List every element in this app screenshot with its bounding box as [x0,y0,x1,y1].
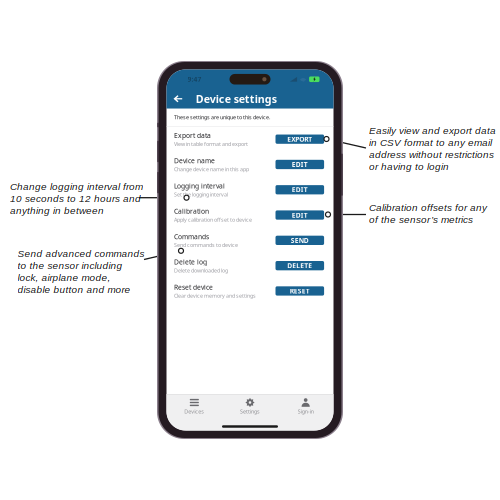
staticText: Delete downloaded log [174,267,228,274]
button[interactable]: Reset device [166,278,333,304]
staticText: Change logging interval from [10,181,143,192]
staticText: Settings [240,408,260,415]
staticText: These settings are unique to this device… [174,114,270,121]
button[interactable]: Logging interval [166,177,333,202]
staticText: Delete log [174,257,207,266]
staticText: to the sensor including [17,260,122,271]
button[interactable]: Export data [166,126,333,152]
staticText: lock, airplane mode, [17,272,110,283]
button[interactable]: Commands [166,228,333,253]
button[interactable]: Devices [166,395,222,416]
staticText: 10 seconds to 12 hours and [10,193,141,204]
button[interactable]: Device name [166,152,333,177]
staticText: Apply calibration offset to device [174,216,252,223]
button[interactable]: Sign-in [278,395,333,416]
staticText: SEND [291,236,309,245]
staticText: address without restrictions [369,149,494,160]
staticText: Change device name in this app [174,166,249,173]
staticText: Calibration [174,207,209,216]
staticText: Set the logging interval [174,191,228,198]
staticText: DELETE [287,261,312,270]
staticText: Send advanced commands [17,248,144,259]
staticText: Export data [174,131,211,140]
staticText: 9:47 [187,75,201,84]
staticText: Logging interval [174,181,225,190]
staticText: EDIT [292,160,308,169]
staticText: or having to login [369,161,449,172]
staticText: in CSV format to any email [369,137,492,148]
staticText: Reset device [174,283,213,292]
staticText: Sign-in [298,408,314,415]
staticText: disable button and more [17,284,130,295]
staticText: RESET [290,286,310,295]
staticText: EXPORT [287,135,312,144]
staticText: EDIT [292,185,308,194]
button[interactable]: Back [169,89,186,108]
staticText: Calibration offsets for any [369,202,487,213]
staticText: Device settings [196,92,277,106]
button[interactable]: Settings [222,395,278,416]
staticText: Device name [174,156,215,165]
staticText: Send commands to device [174,241,238,249]
staticText: View in table format and export [174,140,248,147]
button[interactable]: Calibration [166,202,333,228]
staticText: EDIT [292,211,308,219]
staticText: Commands [174,232,209,241]
staticText: of the sensor’s metrics [369,214,473,225]
staticText: anything in between [10,205,104,216]
staticText: Devices [184,408,204,415]
staticText: Easily view and export data [369,125,496,136]
staticText: Clear device memory and settings [174,292,256,299]
button[interactable]: Delete log [166,253,333,278]
